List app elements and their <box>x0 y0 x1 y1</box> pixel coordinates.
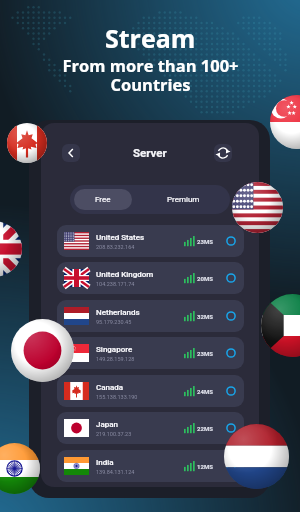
staticText: 24MS <box>197 388 213 395</box>
staticText: Japan <box>96 420 119 429</box>
staticText: Server <box>133 146 167 159</box>
staticText: 20MS <box>197 275 213 282</box>
staticText: From more than 100+ Countries <box>62 54 239 95</box>
button[interactable]: Japan <box>57 412 244 444</box>
staticText: 139.84.131.124 <box>96 469 135 475</box>
staticText: United Kingdom <box>96 270 154 279</box>
button[interactable]: United States <box>57 225 244 257</box>
button[interactable]: Netherlands <box>57 300 244 332</box>
staticText: 22MS <box>197 425 213 432</box>
button[interactable]: Refresh <box>214 144 232 162</box>
staticText: 208.83.232.164 <box>96 244 135 250</box>
button[interactable]: India <box>57 450 244 482</box>
staticText: 23MS <box>197 238 213 245</box>
button[interactable]: Singapore <box>57 337 244 369</box>
staticText: Netherlands <box>96 308 140 317</box>
staticText: 155.138.133.190 <box>96 394 138 400</box>
button[interactable]: Premium <box>136 185 230 214</box>
button[interactable]: Back <box>62 144 80 162</box>
button[interactable]: Canada <box>57 375 244 407</box>
staticText: 219.100.37.23 <box>96 431 132 437</box>
staticText: Free <box>95 195 111 204</box>
staticText: 104.238.171.74 <box>96 281 135 287</box>
staticText: 149.28.159.128 <box>96 356 135 362</box>
staticText: 95.179.230.45 <box>96 319 132 325</box>
button[interactable]: Free <box>74 189 132 210</box>
staticText: 23MS <box>197 350 213 357</box>
staticText: Singapore <box>96 345 133 354</box>
button[interactable]: United Kingdom <box>57 262 244 294</box>
staticText: United States <box>96 233 145 242</box>
staticText: 12MS <box>197 463 213 470</box>
staticText: Premium <box>167 195 200 204</box>
staticText: 32MS <box>197 313 213 320</box>
staticText: Canada <box>96 383 124 392</box>
staticText: India <box>96 458 114 467</box>
staticText: Stream <box>105 21 196 55</box>
